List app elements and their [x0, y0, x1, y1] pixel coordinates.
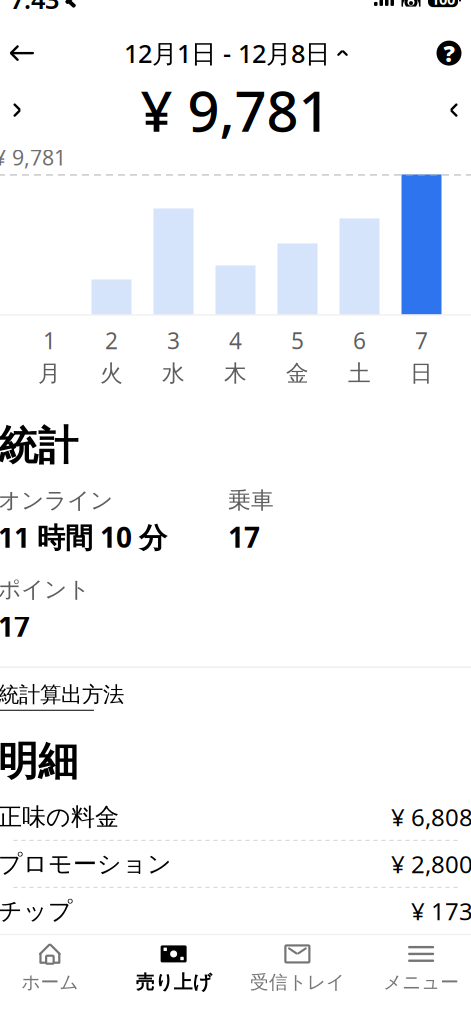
staticText: 5	[291, 325, 304, 355]
staticText: 4	[229, 325, 242, 355]
staticText: 土	[348, 359, 371, 387]
button[interactable]: ヘルプ	[423, 31, 471, 75]
button[interactable]: メニュー	[359, 932, 471, 1000]
button[interactable]: 12月1日 - 12月8日	[118, 31, 353, 75]
button[interactable]: 統計算出方法	[0, 682, 124, 711]
button[interactable]: 次の週	[429, 82, 471, 138]
staticText: 統計	[0, 421, 78, 470]
staticText: 1	[43, 325, 56, 355]
staticText: ?	[443, 38, 454, 68]
staticText: ¥ 9,781	[0, 143, 66, 171]
button[interactable]: 戻る	[0, 31, 48, 75]
staticText: ホーム	[21, 971, 78, 994]
staticText: 明細	[0, 737, 78, 786]
button[interactable]: ホーム	[0, 932, 112, 1000]
staticText: メニュー	[383, 971, 459, 994]
button[interactable]: 受信トレイ	[235, 932, 359, 1000]
staticText: 17	[0, 607, 30, 645]
staticText: 統計算出方法	[0, 682, 124, 708]
staticText: 月	[38, 359, 61, 387]
staticText: ポイント	[0, 575, 90, 603]
staticText: 正味の料金	[0, 802, 119, 832]
staticText: 日	[410, 359, 433, 387]
staticText: 100	[431, 0, 455, 9]
button[interactable]: 前の週	[0, 82, 42, 138]
staticText: 7	[415, 325, 428, 355]
staticText: ¥ 9,781	[140, 73, 330, 147]
staticText: 売り上げ	[136, 971, 212, 994]
staticText: 金	[286, 359, 309, 387]
staticText: チップ	[0, 896, 73, 926]
staticText: 木	[224, 359, 247, 387]
staticText: 17	[228, 518, 260, 556]
staticText: プロモーション	[0, 849, 172, 879]
staticText: ¥ 6,808	[391, 801, 471, 833]
staticText: ¥ 173	[411, 895, 471, 927]
staticText: 11 時間 10 分	[0, 518, 167, 556]
staticText: 受信トレイ	[250, 971, 345, 994]
staticText: 2	[105, 325, 118, 355]
staticText: 6	[353, 325, 366, 355]
staticText: 7:43	[10, 0, 59, 16]
staticText: 乗車	[228, 486, 274, 514]
staticText: 3	[167, 325, 180, 355]
button[interactable]: 売り上げ	[112, 932, 236, 1000]
staticText: 12月1日 - 12月8日	[124, 36, 330, 70]
staticText: ¥ 2,800	[391, 848, 471, 880]
staticText: 火	[100, 359, 123, 387]
staticText: オンライン	[0, 486, 113, 514]
staticText: 水	[162, 359, 185, 387]
